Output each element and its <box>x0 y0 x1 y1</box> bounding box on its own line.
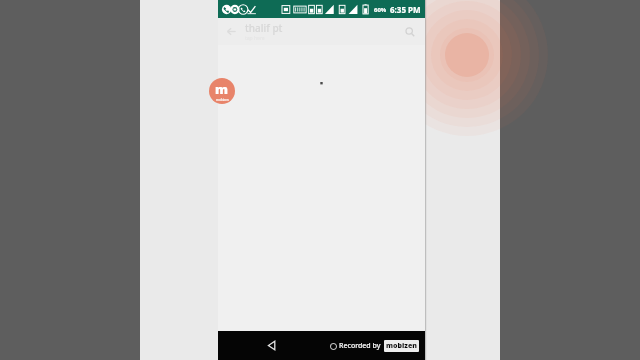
staticText: Recorded by <box>339 341 381 351</box>
staticText: thalif pt <box>245 21 283 35</box>
button[interactable]: Back <box>242 331 300 360</box>
staticText: mobizen <box>216 98 229 102</box>
staticText: mobizen <box>386 341 417 351</box>
button[interactable]: Search <box>396 18 423 45</box>
staticText: 60% <box>374 6 387 14</box>
staticText: 6:35 PM <box>390 4 421 15</box>
other: Mobizen watermark <box>209 78 235 104</box>
staticText: m <box>215 80 229 98</box>
